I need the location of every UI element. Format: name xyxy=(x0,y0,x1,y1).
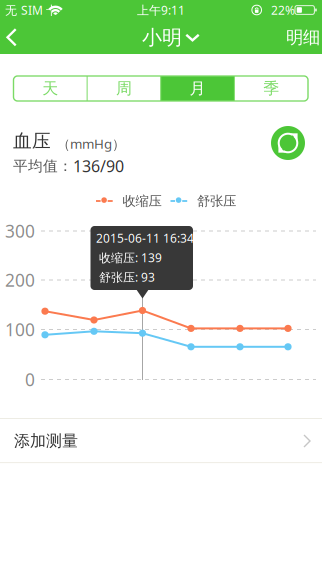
staticText: 明细 xyxy=(286,27,320,48)
staticText: 舒张压 xyxy=(197,193,236,209)
staticText: 0 xyxy=(25,368,35,391)
staticText: （mmHg） xyxy=(57,135,125,152)
staticText: 月 xyxy=(190,79,206,98)
staticText: 136/90 xyxy=(73,155,124,177)
button[interactable]: 月 xyxy=(161,76,234,101)
staticText: 舒张压: 93 xyxy=(99,269,155,285)
button[interactable]: 天 xyxy=(13,76,87,101)
staticText: 无 SIM 卡 xyxy=(5,2,58,18)
staticText: 收缩压: 139 xyxy=(99,249,162,265)
button[interactable]: 刷新 xyxy=(271,126,305,160)
staticText: 22% xyxy=(271,2,295,18)
staticText: 血压 xyxy=(13,129,51,152)
staticText: 2015-06-11 16:34 xyxy=(96,230,194,246)
button[interactable]: 小明 xyxy=(138,20,206,54)
staticText: 100 xyxy=(5,318,35,341)
button[interactable]: 添加测量 xyxy=(0,418,322,463)
staticText: 平均值： xyxy=(13,157,73,175)
button[interactable]: 周 xyxy=(87,76,161,101)
staticText: 200 xyxy=(5,268,35,291)
button[interactable]: 季 xyxy=(234,76,308,101)
staticText: 上午9:11 xyxy=(137,2,185,18)
staticText: 小明 xyxy=(142,25,182,50)
staticText: 周 xyxy=(116,79,132,98)
staticText: 季 xyxy=(263,79,279,98)
staticText: 收缩压 xyxy=(122,193,161,209)
staticText: 300 xyxy=(5,219,35,242)
staticText: 添加测量 xyxy=(14,431,78,451)
button[interactable]: 返回 xyxy=(0,20,44,54)
staticText: 天 xyxy=(42,79,58,98)
button[interactable]: 明细 xyxy=(282,20,322,54)
